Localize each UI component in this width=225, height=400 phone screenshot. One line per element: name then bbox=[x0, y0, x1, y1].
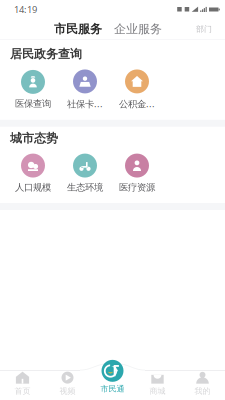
button[interactable]: 市民服务 bbox=[54, 22, 102, 36]
staticText: 市民服务 bbox=[54, 22, 102, 36]
button[interactable]: 医疗资源 bbox=[111, 154, 163, 193]
button[interactable]: 生态环境 bbox=[59, 154, 111, 193]
button[interactable]: 医保查询 bbox=[7, 70, 59, 109]
staticText: 14:19 bbox=[14, 3, 37, 16]
button[interactable]: 视频 bbox=[45, 371, 90, 399]
staticText: 首页 bbox=[14, 386, 30, 396]
staticText: 视频 bbox=[59, 386, 75, 396]
button[interactable]: 市民通 bbox=[90, 364, 135, 398]
button[interactable]: 我的 bbox=[180, 371, 225, 399]
staticText: 企业服务 bbox=[114, 22, 162, 36]
staticText: 居民政务查询 bbox=[10, 47, 82, 61]
staticText: 社保卡... bbox=[67, 97, 103, 110]
button[interactable]: 企业服务 bbox=[114, 22, 162, 36]
button[interactable]: 商城 bbox=[135, 371, 180, 399]
staticText: 医疗资源 bbox=[119, 182, 155, 193]
button[interactable]: 公积金... bbox=[111, 69, 163, 110]
staticText: 生态环境 bbox=[67, 182, 103, 193]
button[interactable]: 部门 bbox=[192, 20, 216, 38]
staticText: 我的 bbox=[194, 386, 210, 396]
button[interactable]: 首页 bbox=[0, 371, 45, 399]
button[interactable]: 社保卡... bbox=[59, 69, 111, 110]
staticText: 商城 bbox=[149, 386, 165, 396]
staticText: 部门 bbox=[196, 24, 212, 34]
staticText: 医保查询 bbox=[15, 98, 51, 109]
staticText: 市民通 bbox=[100, 384, 124, 394]
staticText: 公积金... bbox=[119, 97, 155, 110]
button[interactable]: 人口规模 bbox=[7, 154, 59, 193]
staticText: 人口规模 bbox=[15, 182, 51, 193]
staticText: 城市态势 bbox=[10, 131, 58, 145]
